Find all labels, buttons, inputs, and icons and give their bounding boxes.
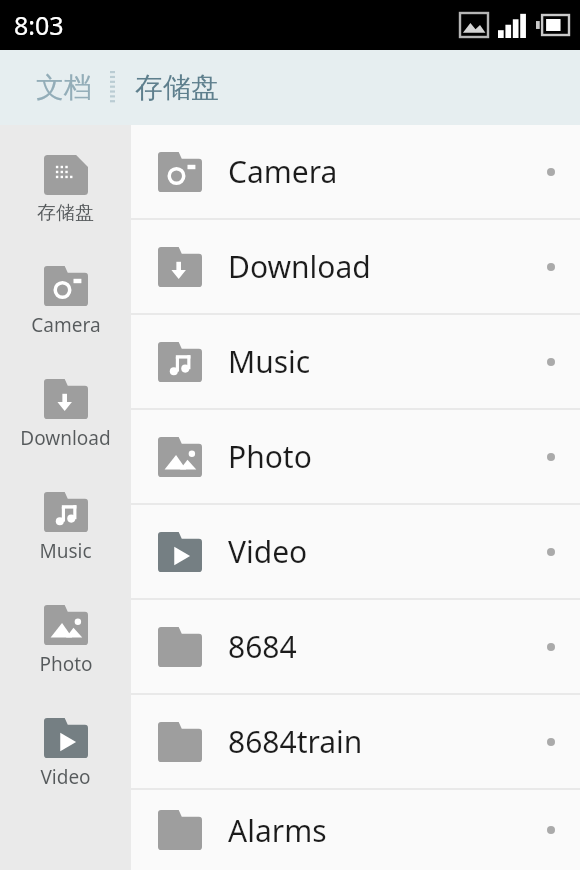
button[interactable]: Download xyxy=(131,220,580,313)
staticText: 文档 xyxy=(36,70,92,105)
button[interactable]: More options for Video xyxy=(528,529,574,575)
button[interactable]: Camera xyxy=(0,252,131,352)
button[interactable]: Camera xyxy=(131,125,580,218)
button[interactable]: 8684 xyxy=(131,600,580,693)
staticText: Music xyxy=(39,538,92,564)
staticText: Camera xyxy=(228,151,528,192)
button[interactable]: More options for Camera xyxy=(528,149,574,195)
staticText: 存储盘 xyxy=(37,201,94,225)
staticText: 存储盘 xyxy=(135,70,219,105)
button[interactable]: More options for Download xyxy=(528,244,574,290)
button[interactable]: More options for Alarms xyxy=(528,807,574,853)
staticText: 8684train xyxy=(228,721,528,762)
staticText: Download xyxy=(20,425,111,451)
button[interactable]: More options for 8684 xyxy=(528,624,574,670)
button[interactable]: More options for 8684train xyxy=(528,719,574,765)
button[interactable]: Alarms xyxy=(131,790,580,870)
staticText: Video xyxy=(228,531,528,572)
button[interactable]: More options for Music xyxy=(528,339,574,385)
button[interactable]: Music xyxy=(131,315,580,408)
button[interactable]: Video xyxy=(131,505,580,598)
staticText: Video xyxy=(40,764,91,790)
button[interactable]: More options for Photo xyxy=(528,434,574,480)
button[interactable]: Photo xyxy=(0,591,131,691)
button[interactable]: Photo xyxy=(131,410,580,503)
staticText: Photo xyxy=(39,651,93,677)
button[interactable]: 8684train xyxy=(131,695,580,788)
button[interactable]: 文档 xyxy=(0,58,110,117)
staticText: Camera xyxy=(31,312,101,338)
button[interactable]: 存储盘 xyxy=(0,141,131,239)
staticText: Photo xyxy=(228,436,528,477)
staticText: Download xyxy=(228,246,528,287)
button[interactable]: Download xyxy=(0,365,131,465)
button[interactable]: Music xyxy=(0,478,131,578)
staticText: 8:03 xyxy=(14,8,64,42)
staticText: 8684 xyxy=(228,626,528,667)
button[interactable]: Video xyxy=(0,704,131,804)
button[interactable]: 存储盘 xyxy=(115,58,237,117)
staticText: Music xyxy=(228,341,528,382)
staticText: Alarms xyxy=(228,810,528,851)
